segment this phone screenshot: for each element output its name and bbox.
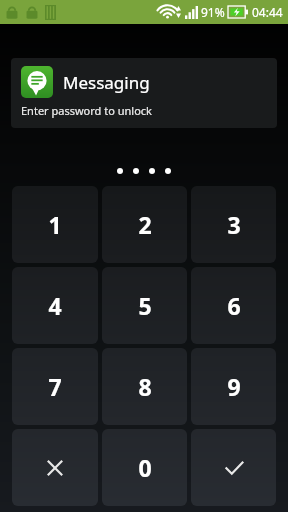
button[interactable]: 7 [12, 348, 98, 425]
button[interactable]: 2 [102, 186, 187, 263]
staticText: 7 [48, 371, 62, 402]
staticText: Messaging [63, 71, 150, 94]
button[interactable]: Confirm [191, 429, 276, 506]
button[interactable]: 9 [191, 348, 276, 425]
staticText: 8 [138, 371, 152, 402]
button[interactable]: 0 [102, 429, 187, 506]
button[interactable]: 3 [191, 186, 276, 263]
button[interactable]: 1 [12, 186, 98, 263]
staticText: 9 [227, 371, 241, 402]
staticText: 91% [201, 4, 225, 20]
button[interactable]: 4 [12, 267, 98, 344]
staticText: 2 [138, 209, 152, 240]
staticText: 1 [48, 209, 62, 240]
staticText: 0 [138, 452, 152, 483]
button[interactable]: 8 [102, 348, 187, 425]
staticText: 6 [227, 290, 241, 321]
button[interactable]: 6 [191, 267, 276, 344]
staticText: Enter password to unlock [21, 103, 152, 118]
button[interactable]: 5 [102, 267, 187, 344]
button[interactable]: Delete [12, 429, 98, 506]
staticText: 04:44 [252, 4, 283, 20]
button[interactable]: Messaging [11, 58, 277, 128]
staticText: 5 [138, 290, 152, 321]
staticText: 4 [48, 290, 62, 321]
staticText: 3 [227, 209, 241, 240]
